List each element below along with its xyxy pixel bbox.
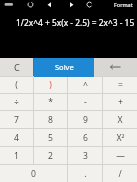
- staticText: .: [84, 168, 87, 180]
- staticText: 0: [31, 168, 36, 180]
- button[interactable]: -: [68, 94, 102, 110]
- button[interactable]: [94, 58, 137, 76]
- button[interactable]: =: [103, 77, 137, 93]
- staticText: -: [84, 96, 87, 108]
- button[interactable]: 9: [68, 111, 102, 128]
- button[interactable]: (: [0, 77, 33, 93]
- button[interactable]: 0: [0, 165, 67, 182]
- button[interactable]: 7: [0, 111, 33, 128]
- staticText: 8: [48, 114, 53, 126]
- staticText: 3: [83, 150, 88, 162]
- staticText: +: [118, 96, 123, 108]
- button[interactable]: —: [103, 147, 137, 164]
- button[interactable]: Format: [114, 1, 133, 8]
- button[interactable]: Solve: [34, 58, 94, 76]
- button[interactable]: 5: [34, 129, 67, 146]
- button[interactable]: ^: [68, 77, 102, 93]
- staticText: ÷: [14, 96, 19, 108]
- staticText: /: [118, 168, 122, 180]
- button[interactable]: 3: [68, 147, 102, 164]
- button[interactable]: 4: [0, 129, 33, 146]
- button[interactable]: X: [103, 111, 137, 128]
- button[interactable]: .: [68, 165, 102, 182]
- staticText: —: [116, 150, 125, 162]
- staticText: X: [117, 114, 123, 126]
- button[interactable]: ÷: [0, 94, 33, 110]
- staticText: X²: [116, 132, 125, 144]
- staticText: (: [15, 79, 18, 91]
- staticText: 7: [14, 114, 19, 126]
- staticText: 1/2x^4 + 5x(x - 2.5) = 2x^3 - 15: [16, 17, 135, 28]
- button[interactable]: X²: [103, 129, 137, 146]
- button[interactable]: 8: [34, 111, 67, 128]
- button[interactable]: *: [34, 94, 67, 110]
- staticText: Solve: [55, 62, 74, 72]
- button[interactable]: C: [0, 58, 33, 76]
- staticText: *: [48, 96, 53, 108]
- button[interactable]: +: [103, 94, 137, 110]
- staticText: =: [118, 79, 123, 91]
- button[interactable]: 2: [34, 147, 67, 164]
- staticText: 2: [48, 150, 53, 162]
- staticText: 5: [48, 132, 53, 144]
- button[interactable]: 1: [0, 147, 33, 164]
- staticText: C: [14, 61, 20, 74]
- button[interactable]: /: [103, 165, 137, 182]
- staticText: 4: [14, 132, 19, 144]
- staticText: 9: [83, 114, 88, 126]
- staticText: 6: [83, 132, 88, 144]
- button[interactable]: 6: [68, 129, 102, 146]
- button[interactable]: ): [34, 77, 67, 93]
- staticText: 1: [14, 150, 19, 162]
- staticText: ^: [83, 79, 88, 91]
- staticText: ): [49, 79, 52, 91]
